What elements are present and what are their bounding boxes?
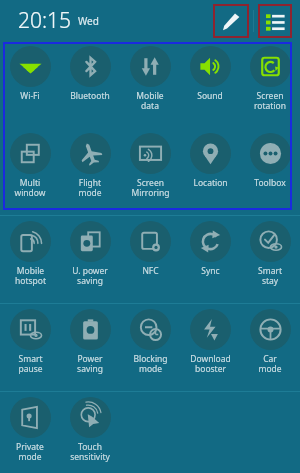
button[interactable]: Screen Mirroring [120, 128, 180, 215]
button[interactable]: Sync [180, 216, 240, 303]
button[interactable]: Multi window [0, 128, 60, 215]
staticText: Location [193, 177, 228, 189]
staticText: Multi window [14, 177, 46, 198]
button[interactable]: NFC [120, 216, 180, 303]
button[interactable]: Mobile hotspot [0, 216, 60, 303]
staticText: Sound [197, 90, 223, 102]
button[interactable]: Mobile data [120, 41, 180, 128]
button[interactable]: List [258, 4, 292, 38]
button[interactable]: U. power saving [60, 216, 120, 303]
button[interactable]: Touch sensitivity [60, 392, 120, 473]
staticText: Private mode [16, 441, 44, 462]
button[interactable]: Smart pause [0, 304, 60, 391]
button[interactable]: Blocking mode [120, 304, 180, 391]
button[interactable]: Wi-Fi [0, 41, 60, 128]
button[interactable]: Screen rotation [240, 41, 300, 128]
button[interactable]: Power saving [60, 304, 120, 391]
button[interactable]: Toolbox [240, 128, 300, 215]
staticText: Power saving [77, 353, 103, 374]
staticText: Bluetooth [70, 90, 110, 102]
staticText: Wi-Fi [20, 90, 40, 102]
staticText: 20:15 [18, 6, 72, 35]
button[interactable]: Location [180, 128, 240, 215]
staticText: Screen Mirroring [131, 177, 170, 198]
button[interactable]: Car mode [240, 304, 300, 391]
staticText: Touch sensitivity [70, 441, 110, 462]
staticText: Sync [201, 265, 220, 277]
staticText: Blocking mode [133, 353, 168, 374]
button[interactable]: Smart stay [240, 216, 300, 303]
button[interactable]: Private mode [0, 392, 60, 473]
button[interactable]: Flight mode [60, 128, 120, 215]
staticText: U. power saving [72, 265, 108, 286]
staticText: Car mode [258, 353, 282, 374]
staticText: Download booster [190, 353, 231, 374]
button[interactable]: Sound [180, 41, 240, 128]
staticText: Mobile data [136, 90, 164, 111]
staticText: Screen rotation [254, 90, 286, 111]
button[interactable]: Download booster [180, 304, 240, 391]
staticText: Toolbox [254, 177, 286, 189]
staticText: Smart pause [18, 353, 43, 374]
button[interactable]: Bluetooth [60, 41, 120, 128]
staticText: Mobile hotspot [15, 265, 46, 286]
staticText: Wed [78, 14, 99, 28]
staticText: Smart stay [258, 265, 282, 286]
staticText: Flight mode [78, 177, 102, 198]
staticText: NFC [142, 265, 159, 277]
button[interactable]: Edit [213, 4, 249, 38]
